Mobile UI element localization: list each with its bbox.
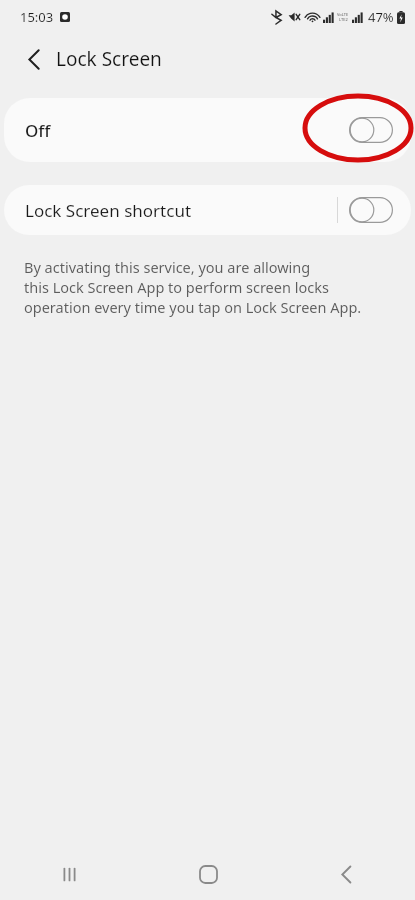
button[interactable]: Back <box>277 848 415 900</box>
staticText: VoLTE <box>337 12 349 17</box>
staticText: By activating this service, you are allo… <box>24 257 311 277</box>
button[interactable]: Back <box>14 39 54 79</box>
staticText: operation every time you tap on Lock Scr… <box>24 297 362 317</box>
button[interactable]: Lock Screen shortcut <box>4 185 411 235</box>
staticText: 15:03 <box>20 8 54 26</box>
staticText: Lock Screen <box>56 46 162 72</box>
staticText: Off <box>25 119 51 142</box>
staticText: 47% <box>368 8 394 26</box>
button[interactable]: Home <box>139 848 277 900</box>
staticText: LTE2 <box>339 17 348 22</box>
button[interactable]: Recent apps <box>0 848 139 900</box>
button[interactable]: Toggle off <box>349 197 393 223</box>
staticText: this Lock Screen App to perform screen l… <box>24 277 329 297</box>
staticText: Lock Screen shortcut <box>25 199 192 222</box>
button[interactable]: Toggle off <box>349 117 393 143</box>
button[interactable]: Off <box>4 98 411 162</box>
